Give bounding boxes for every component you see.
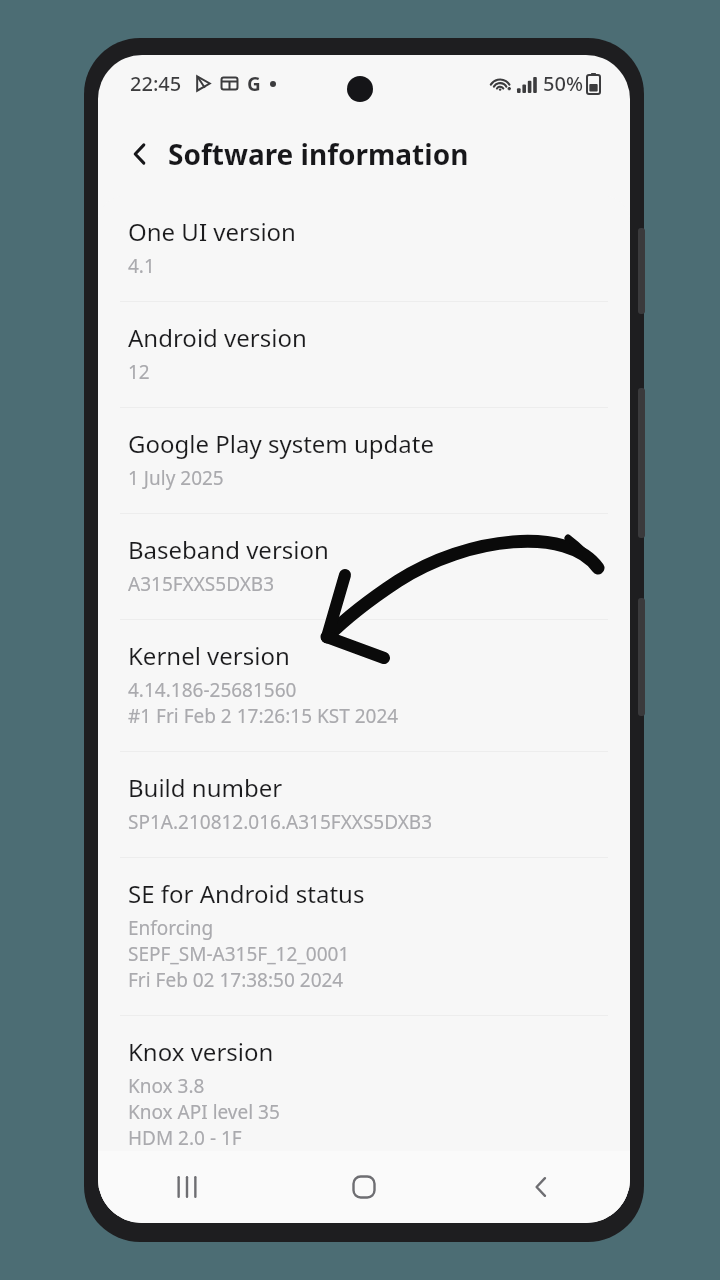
staticText: 4.1 xyxy=(128,253,155,279)
button[interactable]: Back xyxy=(512,1158,570,1216)
staticText: Kernel version xyxy=(128,639,290,672)
button[interactable]: Knox version xyxy=(98,1016,630,1173)
staticText: Google Play system update xyxy=(128,427,435,460)
button[interactable]: Baseband version xyxy=(98,514,630,619)
button[interactable]: One UI version xyxy=(98,196,630,301)
staticText: Software information xyxy=(168,135,469,173)
button[interactable]: Service provider software version xyxy=(98,1174,630,1216)
button[interactable]: Kernel version xyxy=(98,620,630,751)
staticText: One UI version xyxy=(128,215,296,248)
staticText: #1 Fri Feb 2 17:26:15 KST 2024 xyxy=(128,703,399,729)
button[interactable]: Android version xyxy=(98,302,630,407)
staticText: SEPF_SM-A315F_12_0001 xyxy=(128,941,350,967)
staticText: Knox 3.8 xyxy=(128,1073,205,1099)
staticText: HDM 2.0 - 1F xyxy=(128,1125,242,1151)
button[interactable]: Home xyxy=(335,1158,393,1216)
button[interactable]: Build number xyxy=(98,752,630,857)
button[interactable]: Google Play system update xyxy=(98,408,630,513)
button[interactable]: Back xyxy=(116,130,164,178)
staticText: 1 July 2025 xyxy=(128,465,224,491)
staticText: Knox version xyxy=(128,1035,274,1068)
staticText: 22:45 xyxy=(130,70,182,97)
staticText: Enforcing xyxy=(128,915,214,941)
staticText: Fri Feb 02 17:38:50 2024 xyxy=(128,967,344,993)
staticText: 12 xyxy=(128,359,150,385)
button[interactable]: SE for Android status xyxy=(98,858,630,1015)
staticText: Baseband version xyxy=(128,533,329,566)
staticText: Android version xyxy=(128,321,307,354)
button[interactable]: Recent apps xyxy=(158,1158,216,1216)
staticText: Knox API level 35 xyxy=(128,1099,280,1125)
staticText: SP1A.210812.016.A315FXXS5DXB3 xyxy=(128,809,433,835)
staticText: SE for Android status xyxy=(128,877,365,910)
staticText: Service provider software version xyxy=(128,1193,503,1194)
staticText: 50% xyxy=(543,70,583,97)
staticText: A315FXXS5DXB3 xyxy=(128,571,275,597)
staticText: Build number xyxy=(128,771,283,804)
staticText: G xyxy=(247,71,261,97)
staticText: 4.14.186-25681560 xyxy=(128,677,297,703)
